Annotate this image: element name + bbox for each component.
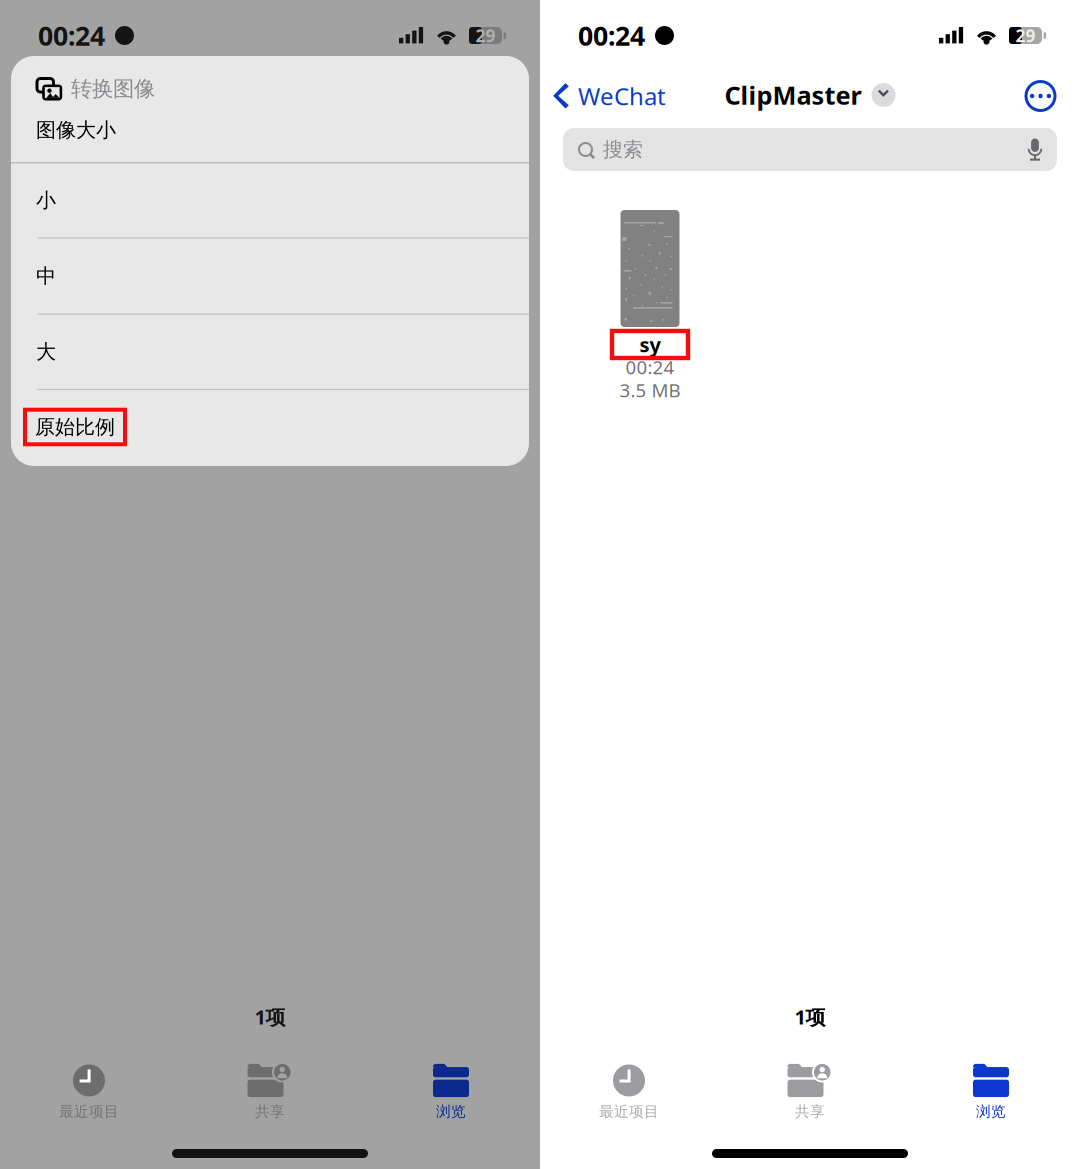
staticText: 共享 [795, 1102, 825, 1120]
staticText: 浏览 [976, 1102, 1006, 1120]
staticText: 共享 [255, 1102, 285, 1120]
staticText: 大 [36, 339, 56, 364]
staticText: 最近项目 [59, 1102, 119, 1120]
button[interactable]: 共享 [210, 1066, 330, 1119]
button[interactable]: 最近项目 [29, 1066, 149, 1119]
button[interactable]: 原始比例 [11, 390, 529, 464]
staticText: 00:24 [625, 355, 674, 379]
button[interactable]: WeChat [540, 74, 674, 118]
staticText: 1项 [794, 1003, 825, 1030]
staticText: 中 [36, 264, 56, 288]
staticText: sy [639, 331, 660, 358]
staticText: WeChat [578, 80, 666, 112]
button[interactable]: 搜索 [563, 128, 1057, 171]
button[interactable]: sy [591, 210, 709, 399]
button[interactable]: 中 [11, 239, 529, 314]
button[interactable]: 浏览 [931, 1066, 1051, 1119]
button[interactable]: 共享 [750, 1066, 870, 1119]
staticText: 最近项目 [599, 1102, 659, 1120]
staticText: 3.5 MB [619, 378, 680, 402]
staticText: 1项 [254, 1003, 285, 1030]
staticText: 搜索 [603, 137, 643, 162]
staticText: 29 [1015, 24, 1035, 47]
button[interactable]: 浏览 [391, 1066, 511, 1119]
staticText: 浏览 [436, 1102, 466, 1120]
button[interactable]: More options [1019, 74, 1062, 117]
staticText: ClipMaster [724, 78, 861, 112]
button[interactable]: 小 [11, 163, 529, 237]
button[interactable]: ClipMaster [724, 74, 895, 116]
staticText: 00:24 [578, 18, 645, 53]
staticText: 图像大小 [36, 118, 116, 142]
staticText: 小 [36, 188, 56, 213]
staticText: 00:24 [38, 18, 105, 53]
button[interactable]: 最近项目 [569, 1066, 689, 1119]
staticText: 原始比例 [35, 415, 115, 439]
button[interactable]: 大 [11, 315, 529, 389]
staticText: 29 [475, 24, 495, 47]
staticText: 转换图像 [71, 76, 155, 102]
